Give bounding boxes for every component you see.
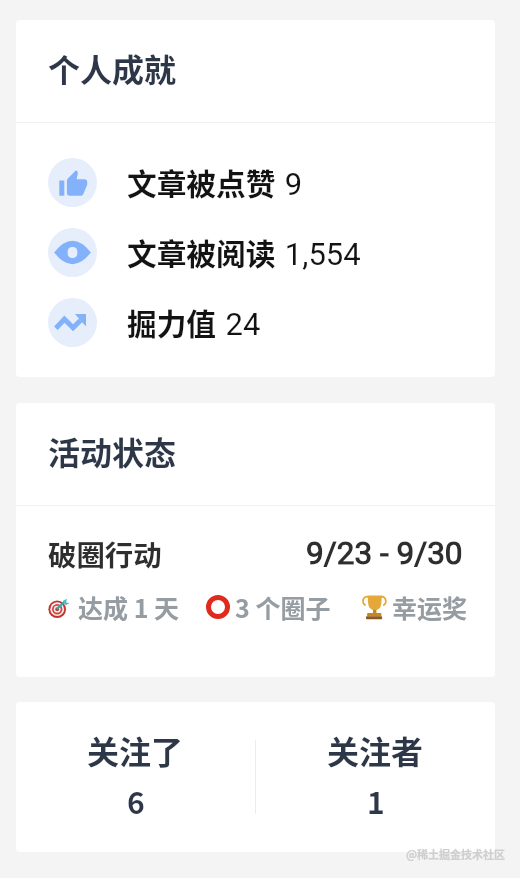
button[interactable]: 关注了 bbox=[16, 702, 255, 852]
staticText: @稀土掘金技术社区 bbox=[406, 846, 506, 862]
button[interactable]: 关注者 bbox=[256, 702, 495, 852]
button[interactable]: Article views bbox=[16, 217, 495, 287]
other: Article likes bbox=[48, 158, 97, 207]
other: Power value bbox=[48, 298, 97, 347]
button[interactable]: Power value bbox=[16, 287, 495, 357]
staticText: 活动状态 bbox=[48, 428, 177, 474]
staticText: 文章被阅读 1,554 bbox=[127, 230, 361, 275]
staticText: 9/23 - 9/30 bbox=[306, 535, 463, 572]
staticText: 达成 1 天 bbox=[78, 589, 180, 625]
staticText: 掘力值 24 bbox=[127, 300, 261, 345]
staticText: 6 bbox=[127, 779, 145, 822]
staticText: 文章被点赞 9 bbox=[127, 160, 303, 205]
staticText: 1 bbox=[367, 779, 385, 822]
staticText: 个人成就 bbox=[48, 45, 177, 91]
staticText: 3 个圈子 bbox=[235, 589, 331, 625]
other: Article views bbox=[48, 228, 97, 277]
staticText: 破圈行动 bbox=[48, 533, 162, 574]
staticText: 幸运奖 bbox=[392, 589, 468, 625]
button[interactable]: 破圈行动 bbox=[16, 531, 495, 576]
staticText: 关注者 bbox=[327, 727, 424, 773]
staticText: 关注了 bbox=[87, 727, 184, 773]
button[interactable]: Article likes bbox=[16, 147, 495, 217]
